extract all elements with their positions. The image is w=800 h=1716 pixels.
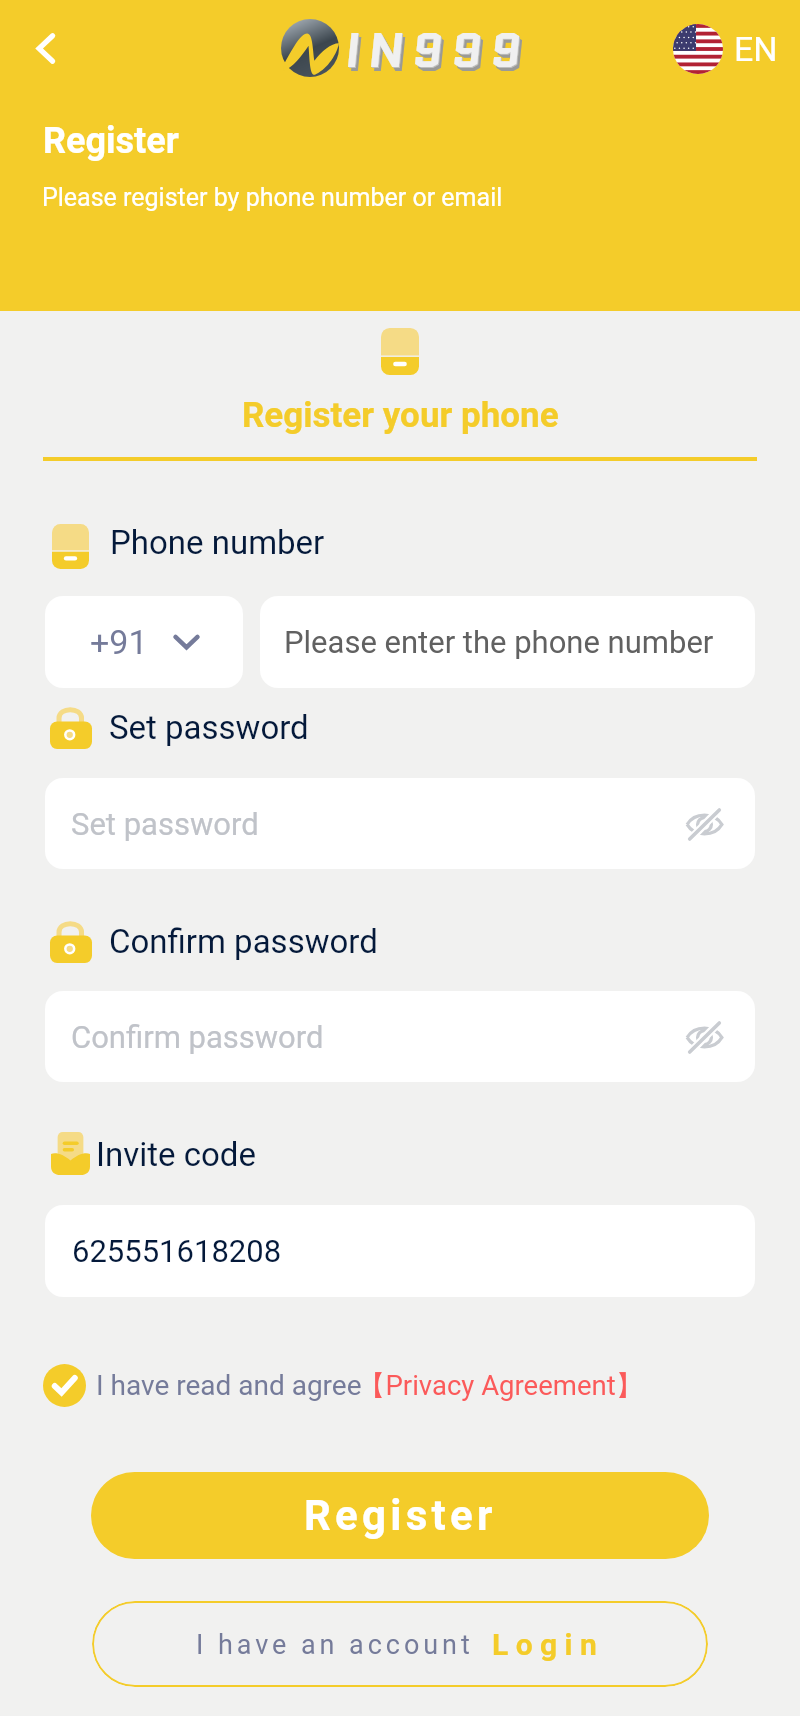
staticText: Confirm password [71,1019,324,1055]
staticText: 625551618208 [72,1233,282,1269]
button[interactable]: Set password [45,778,755,869]
staticText: 【Privacy Agreement】 [358,1369,644,1404]
staticText: I have read and agree [96,1369,362,1402]
button[interactable]: Change language [673,24,778,74]
staticText: I have an account [196,1629,474,1661]
button[interactable]: Register [91,1472,709,1559]
staticText: Please enter the phone number [284,624,714,660]
staticText: EN [734,29,778,69]
staticText: Set password [71,806,259,842]
staticText: Register [43,120,179,162]
staticText: Login [492,1627,605,1662]
button[interactable]: Confirm password [45,991,755,1082]
staticText: Phone number [110,523,325,562]
staticText: IN999 [344,16,529,85]
staticText: Please register by phone number or email [42,183,503,212]
staticText: IN999 [345,17,530,86]
button[interactable]: 625551618208 [45,1205,755,1297]
staticText: Confirm password [109,922,378,961]
staticText: Set password [109,708,309,747]
button[interactable]: I have read and agree [43,1364,362,1407]
staticText: IN999 [347,20,532,89]
button[interactable]: I have an account [92,1601,708,1687]
button[interactable]: Back [16,19,74,77]
staticText: Invite code [96,1135,256,1174]
staticText: +91 [90,622,148,662]
button[interactable]: Country code +91 [45,596,243,688]
button[interactable]: Toggle password visibility [680,800,728,848]
button[interactable]: Toggle password visibility [680,1013,728,1061]
staticText: Register your phone [242,395,559,436]
staticText: Register [304,1491,497,1540]
button[interactable]: Please enter the phone number [260,596,755,688]
